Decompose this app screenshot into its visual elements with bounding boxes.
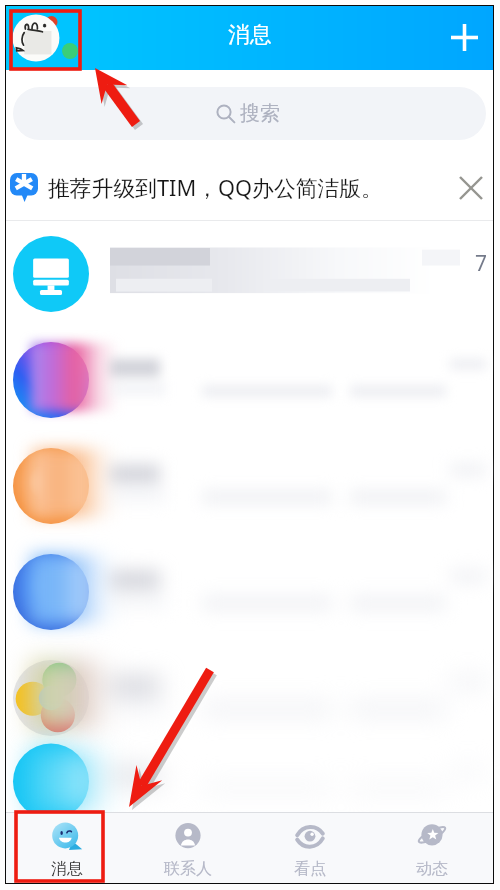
button[interactable]: 看点 — [249, 813, 371, 883]
button[interactable]: 推荐升级到TIM，QQ办公简洁版。 — [6, 140, 493, 220]
button[interactable] — [6, 539, 493, 645]
button[interactable]: 消息 — [6, 813, 127, 883]
staticText: 看点 — [294, 859, 326, 879]
staticText: 动态 — [416, 859, 448, 879]
button[interactable]: 7 — [6, 221, 493, 327]
staticText: 推荐升级到TIM，QQ办公简洁版。 — [48, 173, 383, 203]
staticText: 消息 — [51, 859, 83, 879]
button[interactable]: Profile — [13, 9, 85, 73]
staticText: 联系人 — [164, 859, 212, 879]
button[interactable]: 搜索 — [13, 87, 486, 140]
button[interactable]: 动态 — [371, 813, 493, 883]
staticText: 7 — [475, 249, 488, 278]
button[interactable]: Add — [442, 15, 486, 59]
staticText: 搜索 — [240, 101, 280, 126]
button[interactable] — [6, 433, 493, 539]
button[interactable]: 联系人 — [127, 813, 249, 883]
button[interactable] — [6, 327, 493, 433]
button[interactable]: Close — [450, 167, 492, 209]
button[interactable] — [6, 645, 493, 751]
button[interactable] — [6, 751, 493, 812]
staticText: 消息 — [228, 21, 272, 49]
